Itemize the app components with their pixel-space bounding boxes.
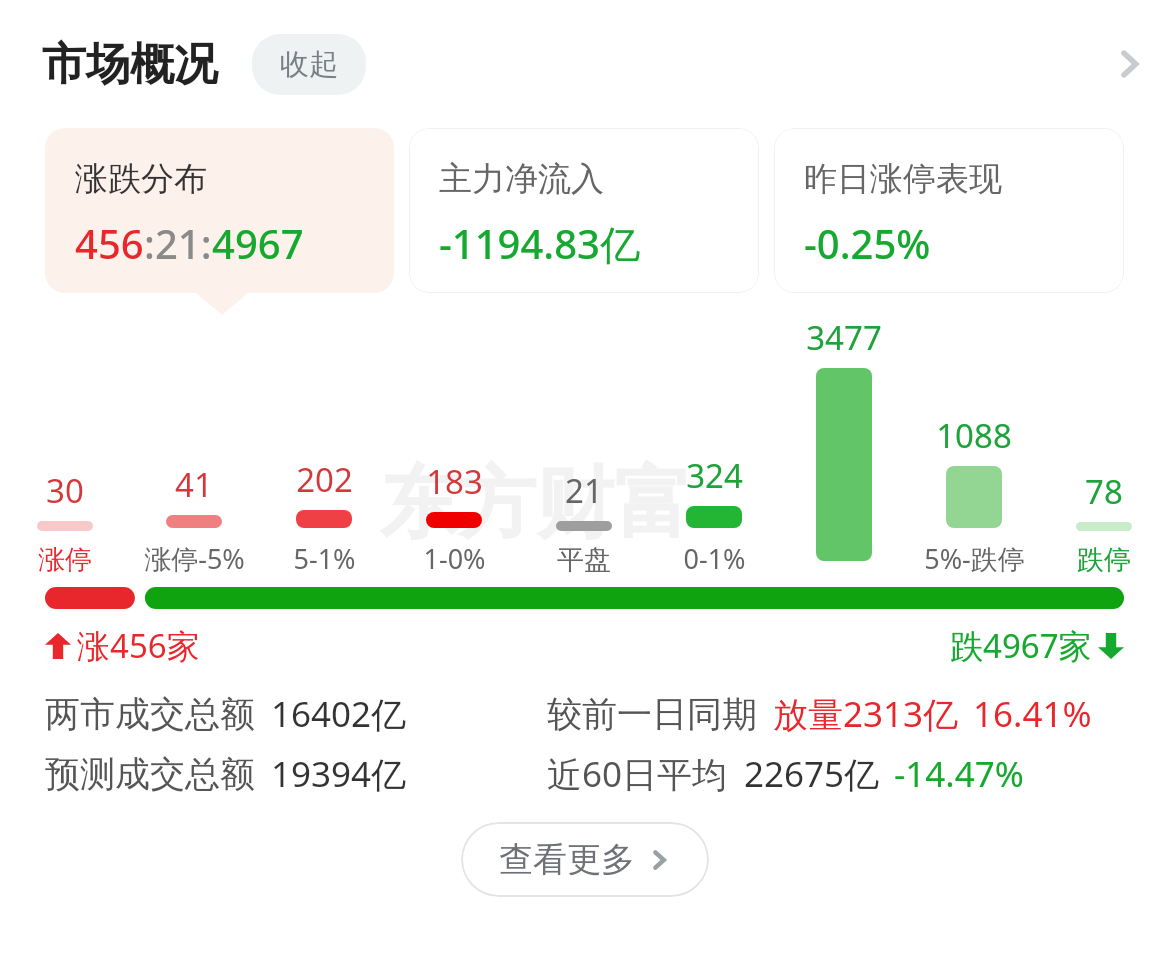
staticText: :21:: [144, 216, 212, 270]
staticText: 16.41%: [973, 690, 1092, 738]
staticText: -0.25%: [804, 216, 931, 270]
button[interactable]: 183: [389, 315, 519, 577]
staticText: 5-1%: [293, 540, 356, 577]
staticText: 涨停: [38, 543, 92, 577]
button[interactable]: 昨日涨停表现: [774, 128, 1124, 293]
button[interactable]: 324: [649, 315, 779, 577]
staticText: 3477: [806, 315, 882, 360]
staticText: 昨日涨停表现: [804, 158, 1002, 200]
staticText: 两市成交总额: [45, 692, 255, 736]
button[interactable]: 收起: [252, 34, 366, 95]
staticText: 19394亿: [271, 750, 407, 798]
staticText: 查看更多: [499, 838, 635, 881]
staticText: 4967: [212, 216, 304, 270]
staticText: 22675亿: [744, 750, 880, 798]
button[interactable]: 202: [259, 315, 389, 577]
staticText: 涨456家: [77, 623, 200, 668]
staticText: 近60日平均: [547, 750, 728, 798]
staticText: -1194.83亿: [439, 216, 640, 271]
staticText: 跌4967家: [950, 623, 1092, 668]
staticText: 预测成交总额: [45, 752, 255, 796]
staticText: 主力净流入: [439, 158, 604, 200]
button[interactable]: 1088: [909, 315, 1039, 577]
staticText: 324: [686, 453, 743, 498]
staticText: 放量2313亿: [773, 690, 959, 738]
staticText: 183: [426, 459, 483, 504]
staticText: 平盘: [557, 543, 611, 577]
staticText: 1088: [936, 413, 1012, 458]
button[interactable]: 展开市场概况: [1089, 24, 1169, 104]
button[interactable]: 主力净流入: [409, 128, 759, 293]
button[interactable]: 41: [129, 315, 259, 577]
button[interactable]: 21: [519, 315, 649, 577]
staticText: 0-1%: [683, 540, 746, 577]
staticText: 30: [46, 468, 84, 513]
staticText: 202: [296, 457, 353, 502]
staticText: 78: [1085, 469, 1123, 514]
staticText: 1-0%: [423, 540, 486, 577]
staticText: 456: [75, 216, 144, 270]
staticText: 较前一日同期: [547, 692, 757, 736]
button[interactable]: 查看更多: [461, 822, 709, 897]
staticText: 收起: [280, 46, 338, 83]
staticText: -14.47%: [894, 750, 1024, 798]
staticText: 涨跌分布: [75, 158, 207, 200]
staticText: 21: [565, 468, 603, 513]
button[interactable]: 30: [0, 315, 129, 577]
staticText: 41: [175, 462, 213, 507]
staticText: 跌停: [1077, 543, 1131, 577]
button[interactable]: 3477: [779, 315, 909, 577]
staticText: 5%-跌停: [924, 540, 1025, 577]
staticText: 涨停-5%: [144, 540, 245, 577]
staticText: 市场概况: [42, 37, 218, 92]
button[interactable]: 涨跌分布: [45, 128, 394, 293]
button[interactable]: 78: [1039, 315, 1169, 577]
staticText: 东方财富: [380, 455, 692, 553]
staticText: 16402亿: [271, 690, 407, 738]
